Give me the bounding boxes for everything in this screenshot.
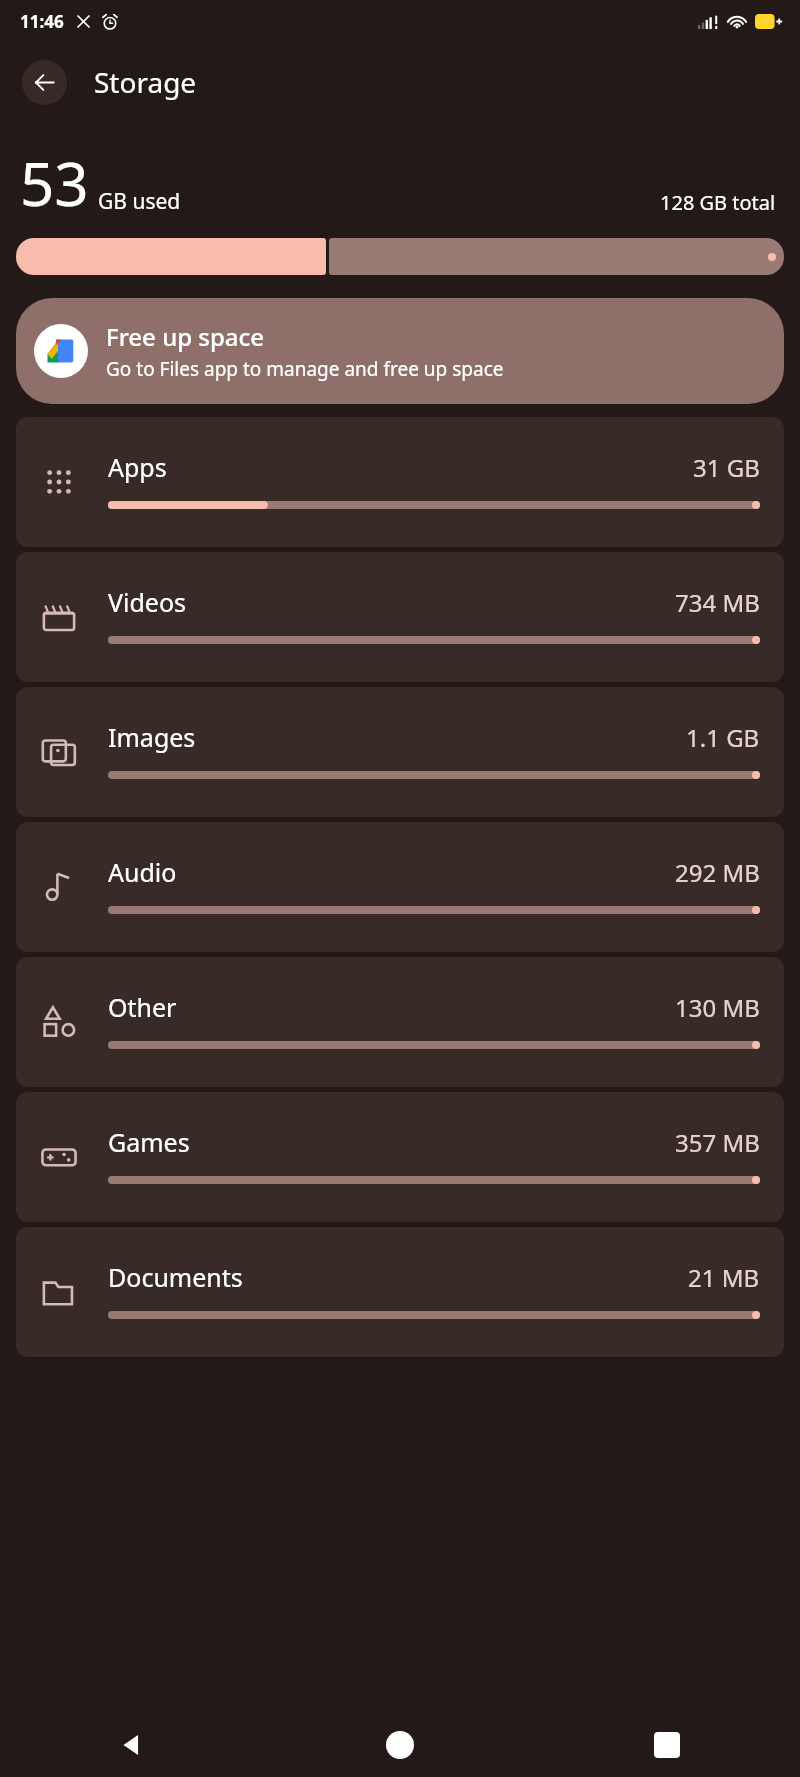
button[interactable]: Games [16,1092,784,1222]
button[interactable]: Images [16,687,784,817]
staticText: Free up space [106,320,265,353]
staticText: Videos [108,585,187,619]
staticText: 734 MB [675,586,760,619]
button[interactable]: Documents [16,1227,784,1357]
button[interactable]: Apps [16,417,784,547]
staticText: 292 MB [675,856,760,889]
staticText: 11:46 [20,10,64,33]
staticText: Storage [94,63,197,101]
staticText: 31 GB [693,451,760,484]
staticText: Games [108,1125,190,1159]
staticText: 1.1 GB [686,721,760,754]
button[interactable]: Videos [16,552,784,682]
staticText: Go to Files app to manage and free up sp… [106,356,504,382]
staticText: Images [108,720,196,754]
button[interactable]: Back [0,1713,266,1777]
staticText: Apps [108,450,167,484]
button[interactable]: Audio [16,822,784,952]
staticText: Audio [108,855,177,889]
staticText: Other [108,990,177,1024]
staticText: 357 MB [675,1126,760,1159]
button[interactable]: Back [22,60,67,105]
staticText: 53 [20,142,89,224]
staticText: 128 GB total [660,189,776,216]
staticText: GB used [98,187,181,216]
button[interactable]: Free up space [16,298,784,404]
button[interactable]: Recent apps [533,1713,800,1777]
button[interactable]: Other [16,957,784,1087]
staticText: 130 MB [675,991,760,1024]
button[interactable]: Home [266,1713,533,1777]
staticText: 21 MB [688,1261,760,1294]
staticText: Documents [108,1260,243,1294]
